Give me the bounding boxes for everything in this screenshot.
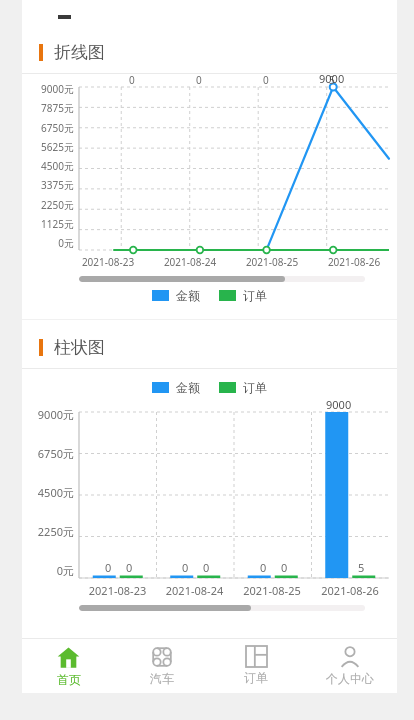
staticText: 2021-08-24 [149, 255, 231, 269]
staticText: 金额 [176, 288, 200, 303]
staticText: 0 [263, 73, 269, 87]
staticText: 订单 [243, 380, 267, 395]
staticText: 6750元 [24, 446, 74, 461]
button[interactable]: 首页 [22, 639, 115, 693]
staticText: 0 [196, 73, 202, 87]
staticText: 0 [182, 560, 189, 575]
staticText: 9000 [319, 71, 345, 86]
staticText: 柱状图 [54, 337, 105, 358]
staticText: 4500元 [28, 159, 74, 173]
staticText: 0 [281, 560, 288, 575]
staticText: 2021-08-24 [156, 583, 233, 598]
staticText: 2021-08-25 [231, 255, 313, 269]
staticText: 2021-08-23 [79, 583, 156, 598]
staticText: 9000元 [24, 407, 74, 422]
button[interactable]: 订单 [209, 639, 303, 693]
button[interactable]: 个人中心 [303, 639, 397, 693]
staticText: 个人中心 [326, 671, 374, 686]
staticText: 订单 [244, 670, 268, 685]
staticText: 2250元 [28, 198, 74, 212]
staticText: 0 [126, 560, 133, 575]
staticText: 3375元 [28, 178, 74, 192]
staticText: 0 [203, 560, 210, 575]
staticText: 2021-08-25 [233, 583, 311, 598]
staticText: 5625元 [28, 140, 74, 154]
staticText: 2021-08-26 [311, 583, 389, 598]
staticText: 4500元 [24, 485, 74, 500]
staticText: 0元 [28, 236, 74, 250]
staticText: 折线图 [54, 42, 105, 63]
staticText: 9000元 [28, 82, 74, 96]
staticText: 0元 [24, 563, 74, 578]
staticText: 2021-08-23 [67, 255, 149, 269]
staticText: 订单 [243, 288, 267, 303]
staticText: 2021-08-26 [313, 255, 395, 269]
staticText: 0 [105, 560, 112, 575]
staticText: 9000 [326, 397, 352, 412]
staticText: 5 [358, 560, 365, 575]
staticText: 6750元 [28, 121, 74, 135]
staticText: 首页 [57, 672, 81, 687]
staticText: 2250元 [24, 524, 74, 539]
staticText: 汽车 [150, 671, 174, 686]
staticText: 0 [260, 560, 267, 575]
staticText: 1125元 [28, 217, 74, 231]
button[interactable]: 汽车 [115, 639, 209, 693]
staticText: 0 [129, 73, 135, 87]
staticText: 7875元 [28, 101, 74, 115]
staticText: 金额 [176, 380, 200, 395]
staticText: 5 [329, 73, 335, 87]
